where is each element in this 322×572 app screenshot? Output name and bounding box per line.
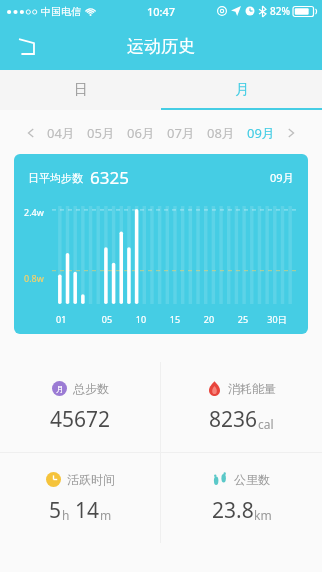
button[interactable]: 活跃时间	[0, 453, 160, 543]
button[interactable]: 09月	[247, 124, 275, 142]
button[interactable]: 05月	[87, 124, 115, 142]
staticText: 14	[75, 496, 100, 525]
staticText: cal	[258, 416, 274, 432]
staticText: 中国电信	[41, 5, 81, 18]
button[interactable]: 04月	[47, 124, 75, 142]
button[interactable]: 日	[0, 70, 161, 110]
staticText: 07月	[167, 124, 195, 142]
staticText: 0.8w	[24, 272, 44, 284]
staticText: 04月	[47, 124, 75, 142]
staticText: 8236	[209, 405, 258, 434]
button[interactable]: Back	[6, 26, 46, 66]
staticText: m	[100, 507, 112, 523]
staticText: 活跃时间	[67, 472, 115, 487]
button[interactable]: 月	[161, 70, 322, 110]
staticText: 月	[56, 384, 64, 394]
staticText: 15	[158, 313, 192, 325]
staticText: 总步数	[73, 381, 109, 396]
staticText: 运动历史	[127, 36, 195, 57]
staticText: 23.8	[212, 496, 254, 525]
staticText: 10	[124, 313, 158, 325]
staticText: 2.4w	[24, 206, 44, 218]
staticText: 09月	[270, 170, 294, 185]
staticText: 09月	[247, 124, 275, 142]
button[interactable]: 公里数	[161, 453, 322, 543]
button[interactable]: 07月	[167, 124, 195, 142]
staticText: 消耗能量	[228, 381, 276, 396]
staticText: 日	[74, 81, 88, 99]
staticText: 06月	[127, 124, 155, 142]
staticText: 10:47	[147, 4, 176, 19]
staticText: 45672	[50, 405, 111, 434]
staticText: 日平均步数	[28, 171, 83, 185]
staticText: 05	[90, 313, 124, 325]
button[interactable]: 日平均步数	[14, 154, 308, 334]
button[interactable]: 08月	[207, 124, 235, 142]
staticText: 82%	[270, 4, 290, 18]
staticText: 30日	[260, 313, 294, 325]
staticText: 01	[56, 313, 90, 325]
button[interactable]: Next month	[281, 123, 301, 143]
button[interactable]: 月	[0, 362, 160, 452]
staticText: 公里数	[234, 472, 270, 487]
staticText: 05月	[87, 124, 115, 142]
staticText: 6325	[90, 166, 129, 189]
staticText: h	[62, 507, 70, 523]
staticText: 5	[49, 496, 62, 525]
staticText: 08月	[207, 124, 235, 142]
button[interactable]: 消耗能量	[161, 362, 322, 452]
staticText: 20	[192, 313, 226, 325]
staticText: 月	[235, 81, 249, 99]
button[interactable]: Previous month	[21, 123, 41, 143]
staticText: 25	[226, 313, 260, 325]
staticText: km	[254, 507, 272, 523]
button[interactable]: 06月	[127, 124, 155, 142]
